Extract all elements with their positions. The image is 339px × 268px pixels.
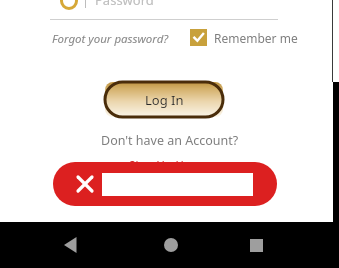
button[interactable]: Back — [64, 237, 80, 253]
staticText: Password — [95, 0, 154, 9]
button[interactable]: Close — [78, 177, 92, 191]
button[interactable]: Log In — [105, 82, 223, 117]
other: Password — [60, 0, 78, 10]
button[interactable]: Sign Up Here — [128, 157, 200, 174]
button[interactable]: Home — [164, 238, 178, 252]
staticText: Log In — [145, 91, 184, 109]
button[interactable]: Forgot your password? — [52, 31, 169, 47]
staticText: Remember me — [214, 30, 298, 46]
button[interactable]: Remember me — [190, 29, 298, 46]
staticText: Don't have an Account? — [101, 132, 239, 149]
